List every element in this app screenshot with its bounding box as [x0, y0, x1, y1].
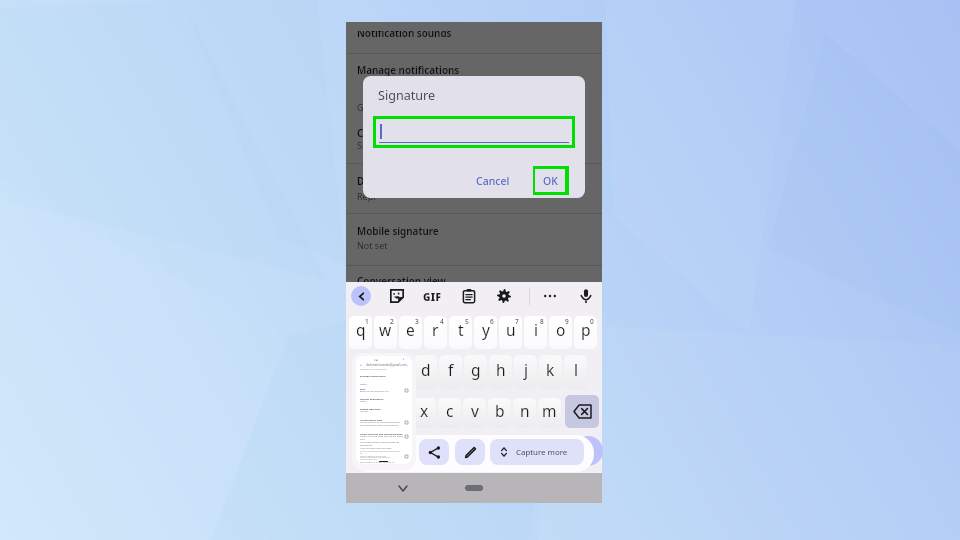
staticText: Smart features and personalisation: [360, 432, 403, 435]
staticText: Si: [357, 139, 365, 151]
button[interactable]: Backspace: [565, 395, 599, 428]
button[interactable]: u: [499, 316, 522, 349]
button[interactable]: n: [513, 398, 536, 428]
staticText: Gmail: [360, 382, 367, 385]
staticText: 0: [590, 317, 594, 326]
button[interactable]: r: [424, 316, 447, 349]
staticText: 5: [465, 317, 469, 326]
staticText: 2: [390, 317, 394, 326]
staticText: Mobile signature: [357, 224, 439, 237]
button[interactable]: f: [439, 355, 462, 389]
staticText: w: [379, 319, 392, 340]
staticText: C: [357, 126, 364, 139]
button[interactable]: s: [389, 355, 412, 389]
button[interactable]: l: [564, 355, 587, 389]
button[interactable]: i: [524, 316, 547, 349]
staticText: y: [482, 319, 490, 340]
staticText: · ▾ ▪: [373, 358, 379, 362]
staticText: 4: [440, 317, 444, 326]
staticText: j: [524, 359, 528, 380]
button[interactable]: Capture more: [490, 439, 584, 465]
button[interactable]: Share: [419, 439, 449, 465]
staticText: ‹: [369, 460, 370, 464]
button[interactable]: q: [349, 316, 372, 349]
button[interactable]: Back: [351, 286, 371, 306]
staticText: x: [420, 400, 429, 421]
button[interactable]: t: [449, 316, 472, 349]
staticText: Gmail data can be used to personalise my…: [360, 455, 403, 464]
staticText: a: [371, 359, 380, 380]
staticText: GIF: [423, 290, 442, 304]
staticText: Group emails into conversations with the…: [360, 421, 401, 427]
staticText: u: [506, 319, 516, 340]
button[interactable]: c: [438, 398, 461, 428]
staticText: f: [448, 359, 454, 380]
button[interactable]: y: [474, 316, 497, 349]
staticText: Capture more: [516, 447, 568, 458]
button[interactable]: a: [364, 355, 387, 389]
staticText: Cancel: [476, 174, 510, 188]
button[interactable]: m: [538, 398, 561, 428]
staticText: Block this for a while or so: [360, 390, 389, 393]
staticText: dsclimantonsolas@gmail.com: [366, 363, 407, 367]
button[interactable]: k: [539, 355, 562, 389]
staticText: n: [520, 400, 530, 421]
button[interactable]: x: [413, 398, 436, 428]
button[interactable]: w: [374, 316, 397, 349]
button[interactable]: Clipboard: [458, 285, 480, 307]
staticText: 7: [515, 317, 519, 326]
staticText: h: [496, 359, 506, 380]
staticText: ▾: [403, 358, 405, 361]
staticText: c: [446, 400, 454, 421]
button[interactable]: Home: [465, 485, 483, 491]
button[interactable]: o: [549, 316, 572, 349]
button[interactable]: Settings: [493, 285, 515, 307]
button[interactable]: Hide keyboard: [392, 478, 413, 499]
staticText: 9: [565, 317, 569, 326]
staticText: Conversation view: [360, 418, 383, 421]
button[interactable]: v: [463, 398, 486, 428]
staticText: Notification sounds: [357, 26, 452, 39]
button[interactable]: p: [574, 316, 597, 349]
staticText: t: [458, 319, 464, 340]
button[interactable]: h: [489, 355, 512, 389]
staticText: p: [581, 319, 591, 340]
staticText: OK: [543, 174, 558, 188]
button[interactable]: Voice input: [575, 285, 597, 307]
staticText: Manage notifications: [360, 374, 386, 377]
button[interactable]: b: [488, 398, 511, 428]
button[interactable]: e: [399, 316, 422, 349]
button[interactable]: Cancel: [468, 170, 518, 192]
staticText: Mail: [360, 387, 366, 390]
staticText: k: [546, 359, 555, 380]
staticText: q: [356, 319, 366, 340]
button[interactable]: d: [414, 355, 437, 389]
staticText: Gmail: [360, 400, 367, 403]
staticText: Repl: [357, 190, 376, 202]
staticText: Manage notifications: [357, 63, 460, 76]
staticText: r: [432, 319, 439, 340]
staticText: Mobile signature: [360, 407, 381, 410]
staticText: 3: [415, 317, 419, 326]
staticText: e: [406, 319, 415, 340]
button[interactable]: Screenshot preview: [356, 356, 412, 464]
staticText: g: [471, 359, 481, 380]
staticText: d: [421, 359, 431, 380]
staticText: o: [556, 319, 566, 340]
staticText: ←: [360, 363, 363, 366]
staticText: NOTIFICATIONS SETTINGS: [360, 368, 386, 371]
staticText: s: [397, 359, 405, 380]
button[interactable]: Sticker: [386, 285, 408, 307]
button[interactable]: j: [514, 355, 537, 389]
button[interactable]: Edit: [455, 439, 485, 465]
button[interactable]: GIF: [423, 290, 442, 304]
button[interactable]: More: [539, 285, 561, 307]
button[interactable]: Signature text field: [376, 119, 572, 145]
button[interactable]: OK: [535, 169, 565, 192]
staticText: 1: [365, 317, 369, 326]
staticText: D: [357, 174, 365, 187]
staticText: Gmail, Chat and Meet can use my email, c…: [360, 435, 404, 450]
button[interactable]: g: [464, 355, 487, 389]
button[interactable]: z: [388, 398, 411, 428]
